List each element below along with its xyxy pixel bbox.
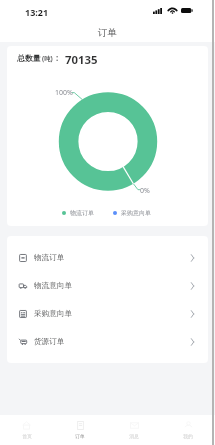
staticText: (吨)	[42, 54, 53, 63]
staticText: 采购意向单	[121, 209, 151, 217]
staticText: 我的	[183, 433, 193, 439]
button[interactable]: 物流意向单	[7, 272, 208, 300]
staticText: :	[56, 53, 59, 64]
button[interactable]: 货源订单	[7, 328, 208, 355]
staticText: 13:21	[25, 6, 49, 18]
button[interactable]: 采购意向单	[7, 300, 208, 328]
button[interactable]: 物流订单	[7, 244, 208, 272]
staticText: 总数量	[17, 53, 41, 63]
staticText: 0%	[140, 186, 150, 196]
staticText: 首页	[22, 433, 32, 439]
staticText: 货源订单	[34, 337, 65, 347]
button[interactable]: 首页	[0, 415, 53, 445]
staticText: 消息	[129, 433, 139, 439]
staticText: 物流订单	[34, 253, 65, 263]
staticText: 物流订单	[70, 209, 94, 217]
button[interactable]: 消息	[107, 415, 161, 445]
staticText: 订单	[75, 433, 85, 439]
staticText: 采购意向单	[34, 309, 72, 319]
staticText: 70135	[65, 52, 98, 68]
button[interactable]: 我的	[161, 415, 215, 445]
staticText: 物流意向单	[34, 281, 72, 291]
button[interactable]: 订单	[53, 415, 107, 445]
staticText: 订单	[98, 27, 117, 39]
staticText: 100%	[55, 88, 73, 98]
